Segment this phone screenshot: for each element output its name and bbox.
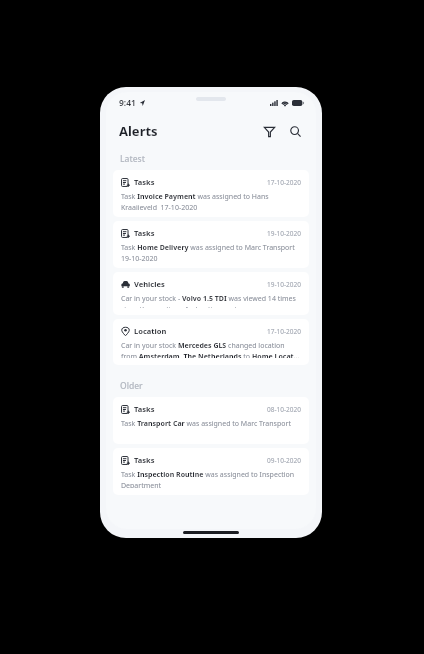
staticText: 19-10-2020 [267,229,301,238]
staticText: Task Transport Car was assigned to Marc … [121,419,291,429]
staticText: Tasks [134,177,155,187]
staticText: 08-10-2020 [267,405,301,414]
staticText: 19-10-2020 [267,280,301,289]
staticText: Vehicles [134,279,165,289]
button[interactable]: Tasks [113,170,309,217]
button[interactable]: Location [113,319,309,365]
staticText: 17-10-2020 [267,327,301,336]
staticText: Task Invoice Payment was assigned to Han… [121,192,301,210]
button[interactable]: Filter [258,120,280,142]
staticText: Older [120,380,143,392]
button[interactable]: Tasks [113,397,309,444]
button[interactable]: Tasks [113,448,309,495]
staticText: Latest [120,153,145,165]
staticText: Alerts [119,122,158,140]
staticText: Tasks [134,228,155,238]
staticText: Task Home Delivery was assigned to Marc … [121,243,301,261]
staticText: Task Inspection Routine was assigned to … [121,470,301,488]
staticText: Car in your stock Mercedes GLS changed l… [121,341,301,358]
button[interactable]: Search [284,120,306,142]
button[interactable]: Vehicles [113,272,309,315]
button[interactable]: Tasks [113,221,309,268]
staticText: Tasks [134,455,155,465]
staticText: 9:41 [119,97,136,109]
staticText: 17-10-2020 [267,178,301,187]
staticText: Location [134,326,167,336]
staticText: Tasks [134,404,155,414]
staticText: 09-10-2020 [267,456,301,465]
staticText: Car in your stock - Volvo 1.5 TDI was vi… [121,294,301,308]
